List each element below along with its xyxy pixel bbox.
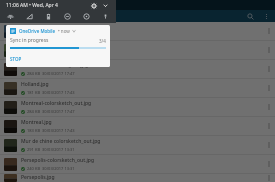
staticText: Holland.jpg [21, 81, 49, 88]
staticText: 11:06 AM • Wed, Apr 4 [6, 2, 58, 9]
button[interactable]: Item options [263, 79, 275, 97]
button[interactable]: Cityscape.jpg [0, 22, 275, 40]
staticText: Great Wall of China.jpg [21, 43, 76, 50]
button[interactable]: Expand [101, 1, 110, 10]
button[interactable]: Item options [263, 22, 275, 40]
button[interactable]: Settings [89, 1, 98, 10]
staticText: OneDrive Mobile [19, 28, 56, 34]
staticText: Mur de chine colorsketch_out.jpg [21, 138, 101, 145]
staticText: 284 KB 30/03/2017 17:47 [27, 109, 75, 114]
button[interactable]: Montreal-colorsketch_out.jpg [0, 98, 275, 116]
staticText: 291 KB 30/03/2017 13:31 [27, 147, 75, 152]
button[interactable]: Battery [43, 11, 54, 22]
button[interactable]: Do not disturb [62, 11, 73, 22]
button[interactable]: Holland-colorsketch_out.jpg [0, 60, 275, 78]
button[interactable]: Item options [263, 41, 275, 59]
staticText: 181 KB 30/03/2017 17:43 [27, 90, 75, 95]
staticText: Persepolis-colorsketch_out.jpg [21, 157, 95, 164]
staticText: STOP [10, 56, 22, 62]
staticText: • now [58, 28, 70, 34]
button[interactable]: Persepolis.jpg [0, 174, 275, 182]
button[interactable]: Mobile data [24, 11, 35, 22]
button[interactable]: Great Wall of China.jpg [0, 41, 275, 59]
staticText: Sync in progress [10, 37, 49, 44]
button[interactable]: Location [81, 11, 92, 22]
button[interactable]: Search [245, 11, 255, 21]
staticText: Cityscape.jpg [21, 24, 53, 31]
staticText: Holland-colorsketch_out.jpg [21, 62, 89, 69]
button[interactable]: Item options [263, 60, 275, 78]
staticText: 3/4 [99, 38, 106, 44]
button[interactable]: Item options [263, 136, 275, 154]
button[interactable]: Item options [263, 98, 275, 116]
staticText: 183 KB 30/03/2017 17:43 [27, 128, 75, 133]
button[interactable]: Item options [263, 117, 275, 135]
button[interactable]: Persepolis-colorsketch_out.jpg [0, 155, 275, 173]
button[interactable]: Holland.jpg [0, 79, 275, 97]
button[interactable]: Montreal.jpg [0, 117, 275, 135]
button[interactable]: Flashlight [100, 11, 111, 22]
staticText: Montreal.jpg [21, 119, 52, 126]
staticText: Persepolis.jpg [21, 174, 55, 181]
button[interactable]: Wi-Fi [5, 11, 16, 22]
button[interactable]: OneDrive Mobile [6, 25, 110, 67]
staticText: 240 KB 30/03/2017 13:31 [27, 166, 75, 171]
staticText: Montreal-colorsketch_out.jpg [21, 100, 92, 107]
button[interactable]: Item options [263, 174, 275, 182]
staticText: 284 KB 30/03/2017 17:47 [27, 71, 75, 76]
button[interactable]: More options [261, 11, 271, 21]
button[interactable]: STOP [10, 56, 22, 62]
button[interactable]: Item options [263, 155, 275, 173]
button[interactable]: Mur de chine colorsketch_out.jpg [0, 136, 275, 154]
